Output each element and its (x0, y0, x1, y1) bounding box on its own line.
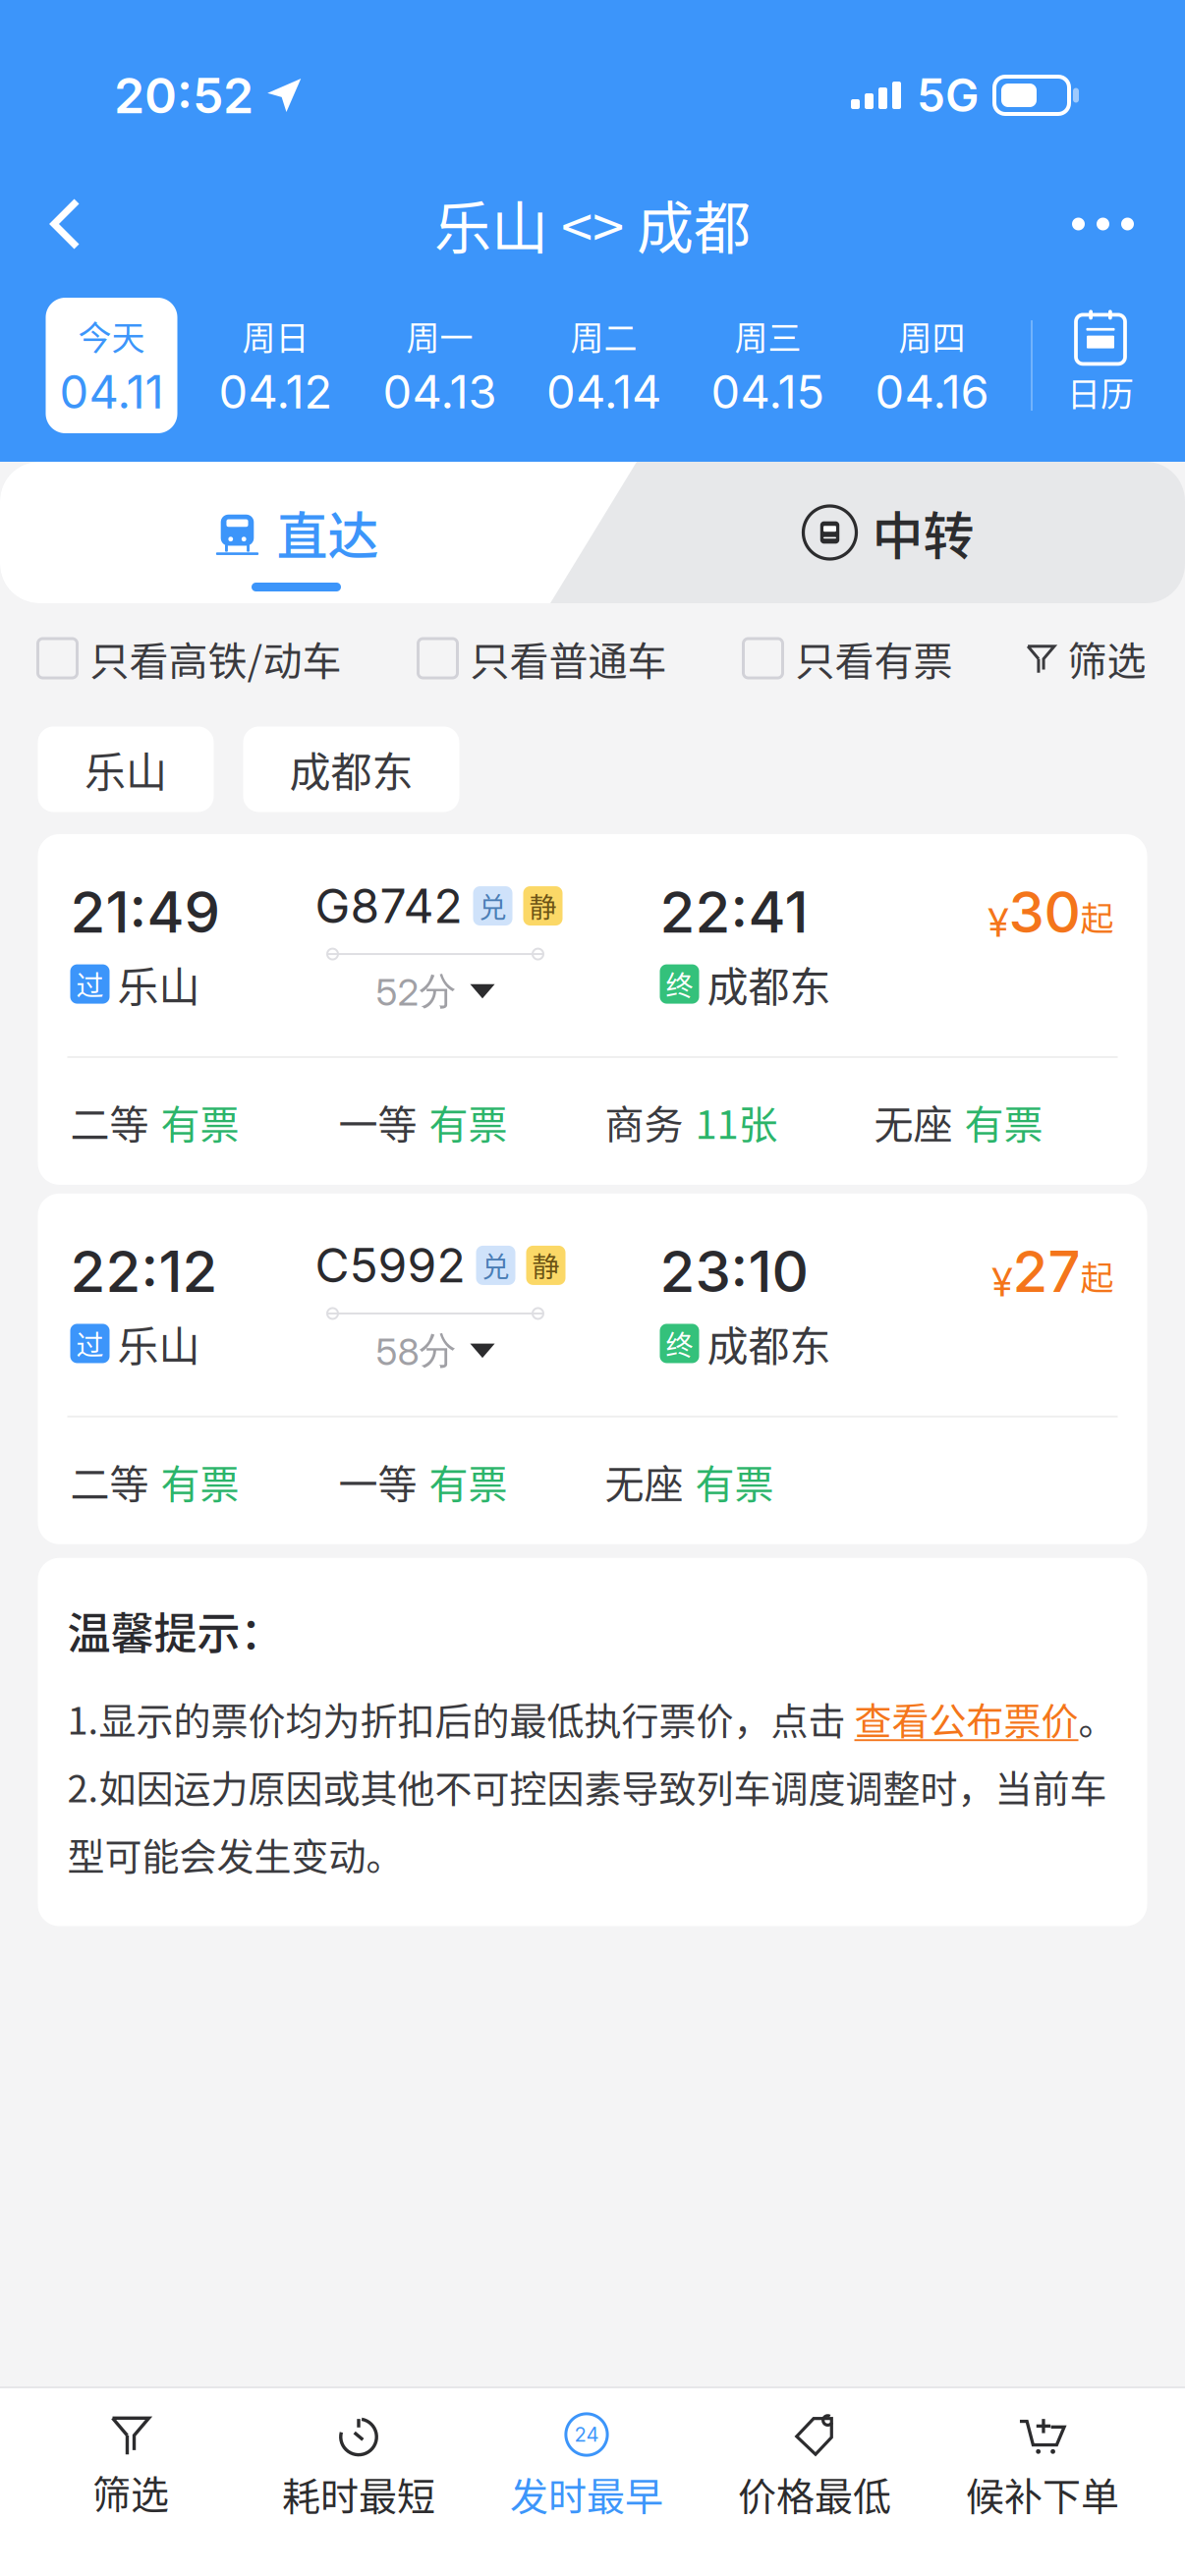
staticText: 04.14 (546, 364, 661, 420)
staticText: 30 (1009, 877, 1080, 946)
staticText: 中转 (872, 496, 974, 570)
staticText: 2.如因运力原因或其他不可控因素导致列车调度调整时，当前车 (67, 1759, 1107, 1813)
staticText: 乐山 (117, 954, 200, 1014)
staticText: 04.11 (59, 364, 164, 420)
staticText: 二等 (70, 1093, 149, 1150)
staticText: 58分 (376, 1327, 456, 1374)
staticText: 有票 (429, 1093, 508, 1150)
staticText: 21:49 (70, 877, 221, 946)
staticText: 终 (666, 964, 693, 1004)
staticText: 价格最低 (738, 2466, 891, 2521)
staticText: 04.16 (875, 364, 989, 420)
button[interactable]: 周二 (522, 298, 686, 433)
button[interactable]: 筛选 (1025, 599, 1146, 708)
staticText: 筛选 (92, 2464, 169, 2520)
staticText: 查看公布票价 (854, 1691, 1078, 1745)
staticText: 成都东 (707, 1314, 831, 1373)
staticText: 兑 (482, 1245, 509, 1285)
staticText: 直达 (277, 496, 379, 570)
staticText: 一等 (339, 1453, 417, 1510)
staticText: 只看普通车 (470, 630, 667, 687)
staticText: 型可能会发生变动。 (67, 1827, 403, 1881)
button[interactable]: 查看公布票价 (854, 1691, 1078, 1745)
staticText: 24 (574, 2423, 599, 2447)
button[interactable]: 乐山 (38, 727, 214, 812)
staticText: 商务 (605, 1093, 683, 1150)
button[interactable]: 更多 (1039, 178, 1167, 270)
staticText: 二等 (70, 1453, 149, 1510)
staticText: 过 (76, 1324, 104, 1363)
button[interactable]: 直达 (0, 462, 592, 603)
staticText: 日历 (1067, 368, 1134, 416)
staticText: 22:12 (70, 1237, 218, 1306)
button[interactable]: 21:49 (38, 834, 1147, 1185)
button[interactable]: 成都东 (243, 727, 459, 812)
staticText: 。 (1078, 1691, 1116, 1745)
staticText: 过 (76, 964, 104, 1004)
staticText: 起 (1080, 892, 1114, 940)
staticText: 温馨提示： (67, 1599, 283, 1662)
staticText: ¥ (992, 1258, 1013, 1306)
staticText: 只看有票 (795, 630, 953, 687)
staticText: 52分 (376, 968, 456, 1015)
staticText: 耗时最短 (282, 2466, 435, 2521)
staticText: 有票 (429, 1453, 508, 1510)
staticText: 乐山 (85, 739, 167, 799)
staticText: 周日 (242, 311, 309, 360)
button[interactable]: 24 (473, 2388, 701, 2541)
staticText: 20:52 (114, 66, 254, 125)
staticText: 乐山 <> 成都 (434, 183, 751, 265)
staticText: 发时最早 (510, 2466, 663, 2521)
button[interactable]: 只看高铁/动车 (38, 599, 341, 708)
button[interactable]: 只看有票 (743, 599, 953, 708)
staticText: 04.13 (383, 364, 497, 420)
button[interactable]: 周日 (194, 298, 358, 433)
staticText: 成都东 (289, 739, 413, 799)
button[interactable]: 周四 (850, 298, 1014, 433)
staticText: 静 (532, 1245, 560, 1285)
staticText: 22:41 (660, 877, 808, 946)
staticText: 有票 (161, 1093, 239, 1150)
button[interactable]: 中转 (592, 462, 1185, 603)
button[interactable]: 周一 (358, 298, 522, 433)
button[interactable]: 今天 (29, 298, 194, 433)
staticText: 一等 (339, 1093, 417, 1150)
staticText: 成都东 (707, 954, 831, 1014)
staticText: 无座 (874, 1093, 953, 1150)
staticText: 27 (1013, 1237, 1080, 1306)
staticText: 起 (1080, 1251, 1114, 1300)
staticText: 周一 (406, 311, 473, 360)
staticText: 04.15 (711, 364, 825, 420)
staticText: 11张 (695, 1093, 778, 1150)
button[interactable]: 价格最低 (701, 2388, 929, 2541)
staticText: 兑 (479, 886, 507, 926)
staticText: 只看高铁/动车 (90, 630, 341, 687)
button[interactable]: 只看普通车 (418, 599, 667, 708)
staticText: 周二 (570, 311, 637, 360)
staticText: 有票 (964, 1093, 1043, 1150)
staticText: 周四 (899, 311, 965, 360)
staticText: 有票 (695, 1453, 774, 1510)
button[interactable]: 筛选 (17, 2390, 245, 2539)
button[interactable]: 周三 (686, 298, 850, 433)
staticText: 候补下单 (966, 2466, 1119, 2521)
staticText: 有票 (161, 1453, 239, 1510)
staticText: 23:10 (660, 1237, 808, 1306)
staticText: G8742 (315, 877, 462, 934)
staticText: 周三 (734, 311, 801, 360)
staticText: 静 (529, 886, 557, 926)
staticText: 1.显示的票价均为折扣后的最低执行票价，点击 (67, 1691, 854, 1745)
button[interactable]: 日历 (1034, 298, 1167, 433)
staticText: 今天 (78, 311, 145, 360)
staticText: C5992 (315, 1237, 465, 1294)
button[interactable]: 22:12 (38, 1194, 1147, 1544)
button[interactable]: 候补下单 (929, 2388, 1157, 2541)
button[interactable]: 耗时最短 (245, 2388, 473, 2541)
button[interactable]: 返回 (18, 176, 113, 272)
staticText: 终 (666, 1324, 693, 1363)
staticText: 04.12 (219, 364, 333, 420)
staticText: 无座 (605, 1453, 683, 1510)
staticText: ¥ (988, 899, 1009, 946)
staticText: 5G (917, 68, 979, 123)
staticText: 筛选 (1068, 630, 1146, 687)
